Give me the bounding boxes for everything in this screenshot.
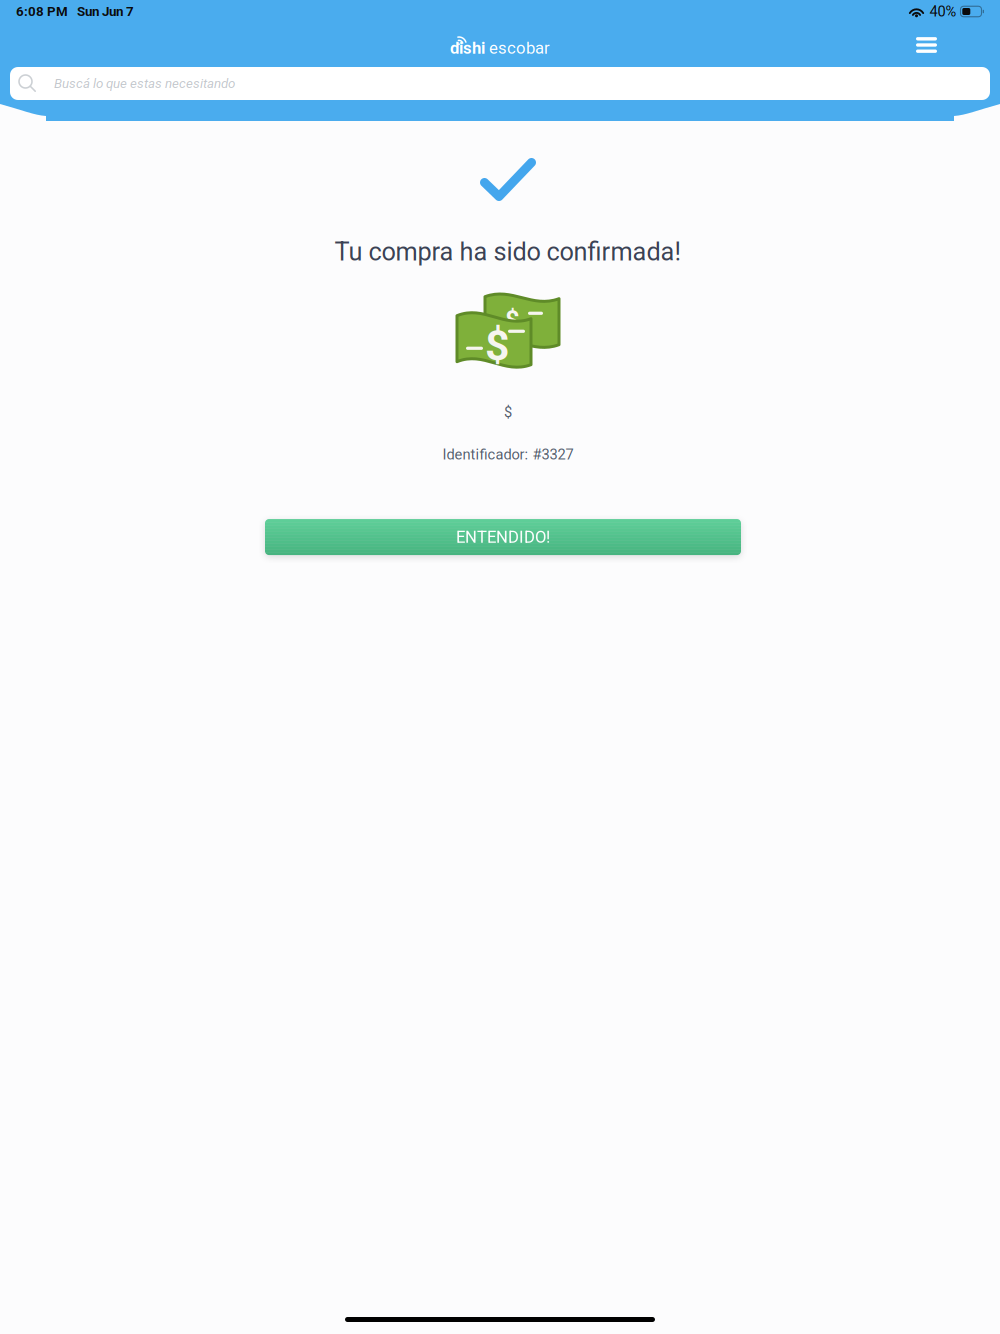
staticText: dishi: [450, 38, 485, 58]
staticText: escobar: [489, 38, 550, 58]
staticText: 40%: [929, 3, 956, 20]
staticText: 6:08 PM: [16, 4, 68, 19]
staticText: Buscá lo que estas necesitando: [54, 76, 235, 91]
staticText: $: [485, 321, 509, 371]
staticText: ENTENDIDO!: [456, 527, 550, 547]
staticText: Identificador: #3327: [442, 446, 573, 463]
staticText: $: [504, 404, 512, 421]
button[interactable]: Menu: [895, 25, 1000, 65]
button[interactable]: ENTENDIDO!: [265, 519, 741, 555]
staticText: Sun Jun 7: [77, 4, 134, 19]
staticText: $: [505, 306, 520, 335]
button[interactable]: Buscá lo que estas necesitando: [10, 67, 990, 100]
staticText: Tu compra ha sido confirmada!: [334, 237, 681, 267]
